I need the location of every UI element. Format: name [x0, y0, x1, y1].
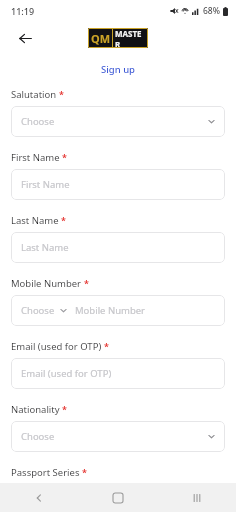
button[interactable]: Back: [0, 483, 78, 512]
staticText: MASTER: [115, 28, 146, 48]
staticText: Salutation: [11, 88, 57, 101]
button[interactable]: Choose: [11, 106, 225, 137]
button[interactable]: Choose: [11, 295, 225, 326]
staticText: *: [82, 466, 87, 478]
staticText: QM: [91, 31, 111, 46]
staticText: Nationality: [11, 403, 60, 416]
staticText: Choose: [21, 115, 55, 128]
staticText: Email (used for OTP): [21, 367, 112, 380]
staticText: Email (used for OTP): [11, 340, 102, 353]
staticText: *: [62, 403, 67, 415]
staticText: *: [62, 151, 67, 163]
button[interactable]: Last Name: [11, 232, 225, 263]
staticText: Last Name: [21, 241, 69, 254]
staticText: Mobile Number: [75, 304, 146, 317]
staticText: Sign up: [101, 63, 135, 76]
staticText: 68%: [203, 5, 220, 17]
staticText: Mobile Number: [11, 277, 82, 290]
staticText: Choose: [21, 430, 55, 443]
staticText: Choose: [21, 304, 55, 317]
staticText: *: [61, 214, 66, 226]
staticText: 11:19: [11, 5, 35, 17]
button[interactable]: Recent apps: [157, 483, 236, 512]
staticText: *: [84, 277, 89, 289]
staticText: Passport Series: [11, 466, 80, 479]
staticText: *: [104, 340, 109, 352]
button[interactable]: Back: [13, 26, 37, 50]
button[interactable]: Email (used for OTP): [11, 358, 225, 389]
staticText: *: [59, 88, 64, 100]
staticText: First Name: [21, 178, 70, 191]
button[interactable]: Home: [78, 483, 157, 512]
button[interactable]: QM: [88, 28, 148, 48]
button[interactable]: Choose: [11, 421, 225, 452]
staticText: Last Name: [11, 214, 59, 227]
button[interactable]: First Name: [11, 169, 225, 200]
button[interactable]: Sign up: [95, 61, 141, 78]
staticText: First Name: [11, 151, 60, 164]
